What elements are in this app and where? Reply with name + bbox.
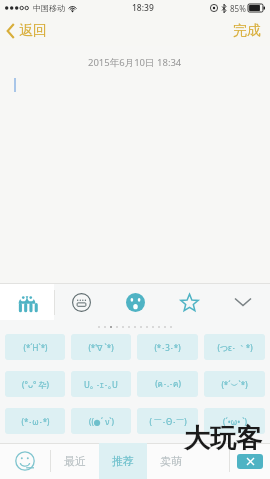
staticText: (*･3･*)	[154, 342, 181, 353]
staticText: 中国移动	[33, 3, 65, 13]
staticText: (´•ω• `)	[223, 416, 247, 427]
staticText: (*´︶`*)	[221, 379, 248, 390]
button[interactable]: Emoji	[108, 284, 162, 320]
button[interactable]: (*･3･*)	[137, 334, 198, 360]
button[interactable]: (°ᴗ° 卆)	[5, 371, 65, 397]
staticText: 完成	[233, 22, 261, 40]
button[interactable]: Collapse keyboard	[216, 284, 270, 320]
staticText: 18:39	[132, 2, 154, 14]
button[interactable]: (*´H`*)	[5, 334, 65, 360]
staticText: 推荐	[112, 454, 134, 468]
button[interactable]: Kaomoji category	[0, 284, 54, 320]
staticText: ( ￣･Θ･￣)	[149, 416, 187, 427]
button[interactable]: U｡ ･ｴ･｡U	[71, 371, 131, 397]
staticText: (*´H`*)	[23, 342, 48, 353]
button[interactable]: (つε･ ｀*)	[204, 334, 265, 360]
button[interactable]: (*･ω･*)	[5, 408, 65, 434]
button[interactable]: (´•ω• `)	[204, 408, 265, 434]
button[interactable]: 返回	[0, 16, 55, 46]
button[interactable]: Keyboard	[55, 284, 108, 320]
staticText: (°ᴗ° 卆)	[22, 379, 49, 390]
button[interactable]: Emoji keyboard	[0, 443, 50, 479]
button[interactable]: 卖萌	[147, 443, 195, 479]
staticText: (*･ω･*)	[21, 416, 50, 427]
staticText: 大玩客	[184, 422, 262, 455]
button[interactable]: ( ￣･Θ･￣)	[137, 408, 198, 434]
staticText: ((●´ ν`)	[89, 416, 114, 427]
staticText: 85%	[230, 3, 246, 14]
staticText: 卖萌	[160, 454, 182, 468]
button[interactable]: ((●´ ν`)	[71, 408, 131, 434]
staticText: (つε･ ｀*)	[217, 342, 253, 353]
button[interactable]: (ฅ･.･ฅ)	[137, 371, 198, 397]
button[interactable]: 最近	[51, 443, 99, 479]
button[interactable]: 完成	[224, 16, 270, 46]
staticText: 最近	[64, 454, 86, 468]
staticText: 返回	[19, 22, 47, 40]
staticText: (ฅ･.･ฅ)	[155, 378, 181, 391]
staticText: (*'∇ `*)	[88, 342, 114, 353]
button[interactable]: Delete	[230, 443, 270, 479]
button[interactable]: Favorites	[162, 284, 216, 320]
staticText: 2015年6月10日 18:34	[88, 56, 182, 69]
button[interactable]: 推荐	[99, 443, 147, 479]
button[interactable]: (*'∇ `*)	[71, 334, 131, 360]
staticText: U｡ ･ｴ･｡U	[84, 379, 118, 390]
button[interactable]: (*´︶`*)	[204, 371, 265, 397]
